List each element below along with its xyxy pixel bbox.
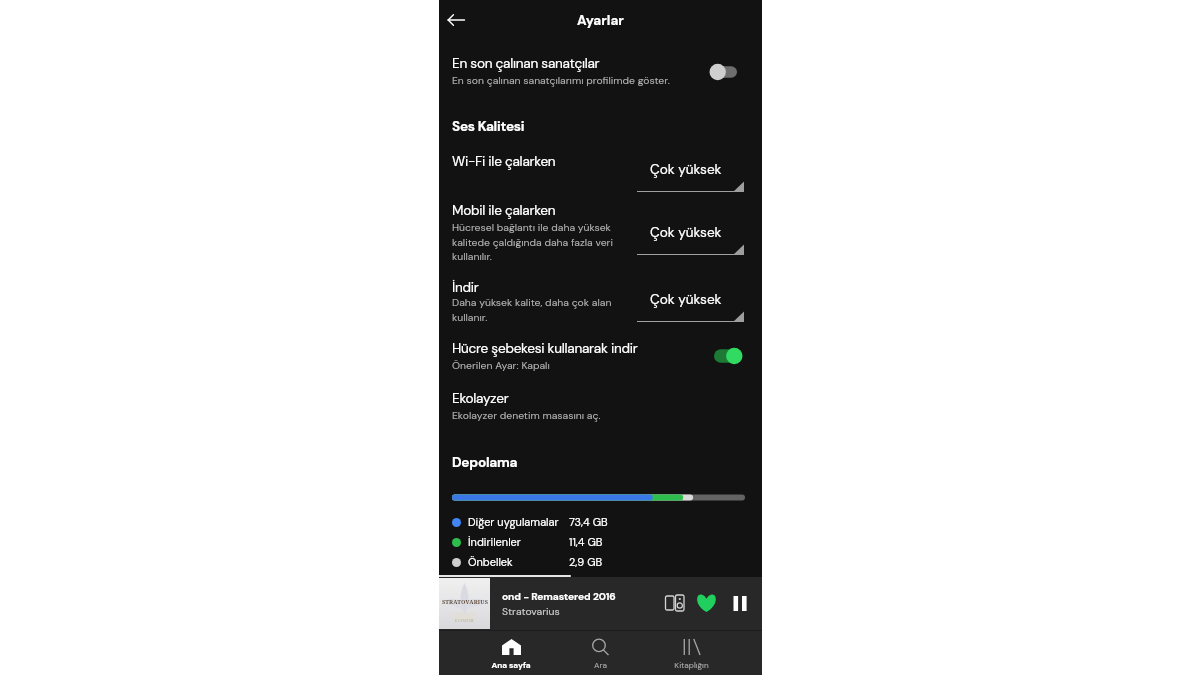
staticText: Wi-Fi ile çalarken: [452, 153, 556, 171]
button[interactable]: Connect to a device: [664, 592, 686, 614]
staticText: Önbellek: [468, 555, 513, 569]
staticText: STRATOVARIUS: [440, 598, 490, 606]
staticText: İndirilenler: [468, 535, 521, 549]
staticText: Daha yüksek kalite, daha çok alan kullan…: [452, 296, 624, 324]
staticText: Ana sayfa: [491, 660, 531, 671]
button[interactable]: Like: [695, 592, 717, 614]
button[interactable]: Ara: [560, 631, 640, 675]
staticText: Diğer uygulamalar: [468, 515, 559, 529]
button[interactable]: Çok yüksek: [637, 156, 744, 196]
staticText: Mobil ile çalarken: [452, 202, 556, 220]
staticText: Çok yüksek: [650, 291, 722, 309]
staticText: 73,4 GB: [569, 515, 608, 529]
staticText: En son çalınan sanatçılar: [452, 55, 600, 73]
staticText: ELYSIUM: [455, 618, 474, 623]
button[interactable]: Switch off: [705, 58, 749, 86]
staticText: Stratovarius: [502, 605, 560, 619]
staticText: Ara: [594, 660, 607, 671]
staticText: Ekolayzer: [452, 390, 509, 408]
staticText: İndir: [452, 279, 479, 297]
button[interactable]: Ana sayfa: [471, 631, 551, 675]
staticText: Kitaplığın: [674, 660, 709, 671]
button[interactable]: Pause: [729, 592, 751, 614]
staticText: 2,9 GB: [569, 555, 603, 569]
button[interactable]: Çok yüksek: [637, 286, 744, 326]
staticText: Çok yüksek: [650, 224, 722, 242]
staticText: Ekolayzer denetim masasını aç.: [452, 409, 601, 423]
staticText: Ses Kalitesi: [452, 118, 525, 136]
staticText: Önerilen Ayar: Kapalı: [452, 359, 550, 373]
button[interactable]: Switch on: [705, 342, 749, 370]
staticText: Çok yüksek: [650, 161, 722, 179]
staticText: En son çalınan sanatçılarımı profilimde …: [452, 74, 670, 88]
staticText: 11,4 GB: [569, 535, 603, 549]
button[interactable]: Çok yüksek: [637, 219, 744, 259]
staticText: Hücre şebekesi kullanarak indir: [452, 340, 638, 358]
staticText: Hücresel bağlantı ile daha yüksek kalite…: [452, 221, 624, 263]
staticText: Ayarlar: [577, 12, 624, 30]
button[interactable]: [439, 577, 762, 630]
button[interactable]: Back: [442, 6, 470, 34]
button[interactable]: Kitaplığın: [651, 631, 731, 675]
staticText: ond - Remastered 2016: [502, 590, 616, 603]
staticText: Depolama: [452, 454, 518, 472]
